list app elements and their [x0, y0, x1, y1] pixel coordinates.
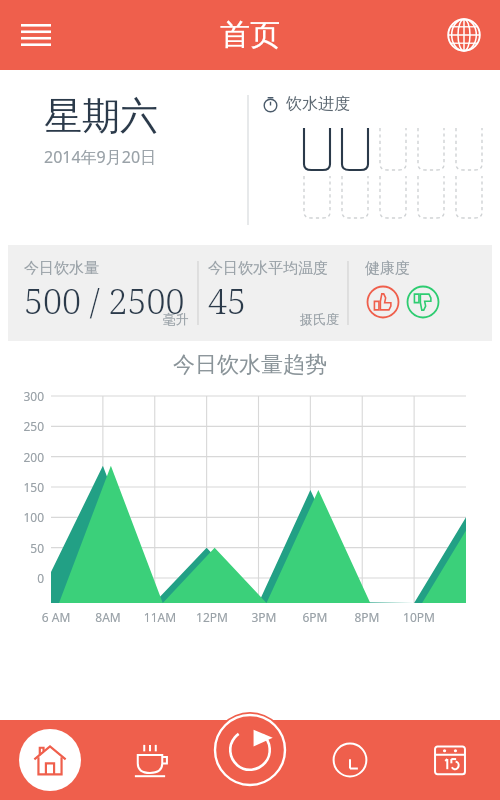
- staticText: 50: [4, 540, 44, 556]
- staticText: 10PM: [391, 609, 447, 625]
- button[interactable]: Bad: [405, 284, 441, 320]
- staticText: 今日饮水量: [24, 259, 99, 278]
- staticText: 今日饮水平均温度: [208, 259, 328, 278]
- staticText: 11AM: [132, 609, 188, 625]
- staticText: 8AM: [80, 609, 136, 625]
- staticText: 250: [4, 418, 44, 434]
- staticText: 饮水进度: [286, 94, 350, 114]
- staticText: 6PM: [287, 609, 343, 625]
- staticText: 300: [4, 388, 44, 404]
- staticText: 150: [4, 479, 44, 495]
- button[interactable]: Menu: [10, 9, 62, 61]
- button[interactable]: Home: [0, 720, 100, 800]
- staticText: 100: [4, 509, 44, 525]
- staticText: 健康度: [365, 259, 410, 278]
- staticText: 500 / 2500: [24, 278, 185, 324]
- staticText: 12PM: [184, 609, 240, 625]
- button[interactable]: Calendar: [400, 720, 500, 800]
- staticText: 今日饮水量趋势: [0, 351, 500, 379]
- button[interactable]: Refresh: [212, 712, 288, 788]
- staticText: 45: [208, 278, 247, 324]
- staticText: 3PM: [236, 609, 292, 625]
- staticText: 2014年9月20日: [44, 146, 157, 168]
- staticText: 毫升: [163, 311, 189, 327]
- staticText: 摄氏度: [300, 311, 339, 327]
- staticText: 200: [4, 449, 44, 465]
- button[interactable]: Language: [440, 11, 488, 59]
- staticText: 首页: [220, 16, 280, 54]
- staticText: 星期六: [44, 92, 158, 140]
- staticText: 6 AM: [28, 609, 84, 625]
- button[interactable]: Drinks: [100, 720, 200, 800]
- button[interactable]: History: [300, 720, 400, 800]
- button[interactable]: Good: [365, 284, 401, 320]
- staticText: 0: [4, 570, 44, 586]
- staticText: 8PM: [339, 609, 395, 625]
